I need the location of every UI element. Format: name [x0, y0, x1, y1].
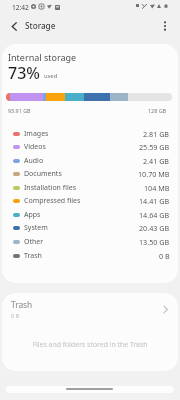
staticText: Compressed files [24, 196, 81, 206]
button[interactable]: Installation files [2, 181, 178, 195]
staticText: Documents [24, 169, 62, 179]
staticText: 12:42 [12, 3, 29, 12]
staticText: 0 B [11, 312, 19, 319]
staticText: Files and folders stored in the Trash [2, 340, 178, 349]
staticText: 20.43 GB [139, 223, 170, 233]
button[interactable]: Trash [2, 249, 178, 263]
staticText: 10.70 MB [138, 169, 170, 179]
staticText: 93.91 GB [8, 107, 31, 114]
staticText: Videos [24, 142, 46, 152]
staticText: Apps [24, 210, 41, 220]
button[interactable]: Compressed files [2, 194, 178, 208]
button[interactable]: Trash [2, 293, 178, 325]
staticText: 13.50 GB [139, 237, 170, 247]
staticText: 73% [8, 62, 40, 84]
staticText: 2.81 GB [143, 129, 170, 139]
staticText: Trash [11, 299, 33, 310]
staticText: Installation files [24, 183, 77, 193]
staticText: Other [24, 237, 44, 247]
button[interactable]: Videos [2, 140, 178, 154]
staticText: Audio [24, 156, 44, 166]
staticText: 128 GB [148, 107, 167, 114]
button[interactable]: Other [2, 235, 178, 249]
staticText: Trash [24, 251, 42, 261]
staticText: 25.59 GB [139, 142, 170, 152]
staticText: Storage [25, 20, 56, 31]
button[interactable]: More options [153, 14, 177, 38]
staticText: 14.64 GB [139, 210, 170, 220]
staticText: 0 B [159, 251, 170, 261]
button[interactable]: Apps [2, 208, 178, 222]
staticText: 2.41 GB [143, 156, 170, 166]
staticText: Images [24, 129, 49, 139]
staticText: 104 MB [144, 183, 170, 193]
staticText: System [24, 223, 48, 233]
staticText: Internal storage [8, 51, 77, 63]
button[interactable]: Audio [2, 154, 178, 168]
button[interactable]: Documents [2, 167, 178, 181]
button[interactable]: Images [2, 127, 178, 141]
button[interactable]: Navigate up [2, 14, 26, 38]
staticText: used [44, 72, 58, 80]
button[interactable]: System [2, 221, 178, 235]
staticText: 14.41 GB [139, 196, 170, 206]
